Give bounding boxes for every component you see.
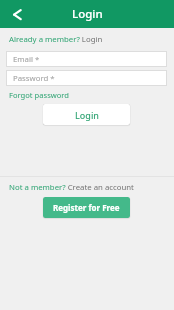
button[interactable]: Forgot password (9, 90, 69, 100)
button[interactable]: Login (43, 104, 130, 125)
staticText: Already a member? Login (9, 34, 103, 45)
staticText: Email * (13, 54, 40, 65)
button[interactable]: Email * (6, 51, 167, 67)
staticText: Login (75, 109, 99, 121)
staticText: Password * (13, 73, 55, 84)
staticText: Login (72, 6, 103, 22)
staticText: Register for Free (53, 202, 120, 213)
button[interactable]: Password * (6, 70, 167, 86)
button[interactable]: Register for Free (43, 197, 130, 218)
button[interactable]: Back (0, 1, 27, 28)
staticText: Not a member? Create an account (9, 182, 134, 193)
